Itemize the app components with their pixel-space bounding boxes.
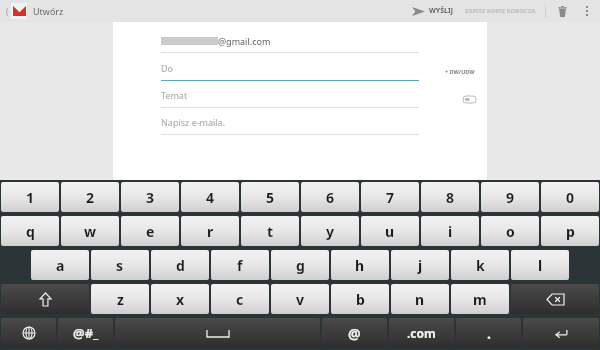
button[interactable]: u — [361, 216, 419, 246]
staticText: e — [146, 222, 155, 241]
staticText: q — [26, 222, 35, 241]
button[interactable]: .com — [389, 318, 454, 348]
button[interactable]: d — [151, 250, 209, 280]
button[interactable]: Shift — [1, 284, 89, 314]
staticText: d — [176, 256, 185, 275]
staticText: 2 — [86, 188, 95, 207]
button[interactable]: z — [91, 284, 149, 314]
staticText: c — [236, 290, 244, 309]
staticText: @#_ — [73, 324, 99, 342]
staticText: o — [506, 222, 515, 241]
staticText: x — [176, 290, 185, 309]
staticText: a — [56, 256, 65, 275]
staticText: 8 — [446, 188, 455, 207]
button[interactable]: @ — [322, 318, 387, 348]
button[interactable]: e — [121, 216, 179, 246]
button[interactable]: @#_ — [58, 318, 113, 348]
button[interactable]: WYŚLIJ — [409, 0, 456, 22]
button[interactable]: y — [301, 216, 359, 246]
staticText: m — [473, 290, 487, 309]
staticText: p — [566, 222, 575, 241]
staticText: 1 — [26, 188, 35, 207]
button[interactable]: o — [481, 216, 539, 246]
button[interactable]: Enter — [523, 318, 599, 348]
button[interactable]: a — [31, 250, 89, 280]
staticText: .com — [407, 325, 436, 341]
button[interactable]: Attach file — [461, 94, 477, 104]
staticText: l — [538, 256, 543, 275]
button[interactable]: 8 — [421, 182, 479, 212]
staticText: ( — [6, 6, 9, 17]
button[interactable]: s — [91, 250, 149, 280]
staticText: Napisz e-maila. — [161, 116, 226, 128]
staticText: Utwórz — [33, 5, 64, 17]
button[interactable]: + DW/UDW — [443, 66, 477, 77]
button[interactable]: Napisz e-maila. — [161, 116, 419, 128]
staticText: f — [237, 256, 243, 275]
staticText: + DW/UDW — [445, 68, 475, 75]
staticText: j — [418, 256, 423, 275]
button[interactable]: More options — [580, 4, 594, 18]
button[interactable]: 6 — [301, 182, 359, 212]
button[interactable]: v — [271, 284, 329, 314]
staticText: w — [84, 222, 96, 241]
staticText: y — [326, 222, 334, 241]
staticText: s — [116, 256, 124, 275]
staticText: h — [355, 256, 365, 275]
button[interactable]: b — [331, 284, 389, 314]
staticText: z — [117, 290, 124, 309]
button[interactable]: 7 — [361, 182, 419, 212]
staticText: . — [487, 324, 491, 343]
button[interactable]: ZAPISZ KOPIĘ ROBOCZĄ — [462, 7, 539, 15]
button[interactable]: j — [391, 250, 449, 280]
button[interactable]: g — [271, 250, 329, 280]
button[interactable]: Temat — [161, 89, 419, 101]
button[interactable]: 9 — [481, 182, 539, 212]
button[interactable]: 2 — [61, 182, 119, 212]
button[interactable]: 1 — [1, 182, 59, 212]
button[interactable]: Backspace — [511, 284, 599, 314]
staticText: @ — [348, 324, 361, 343]
button[interactable]: 4 — [181, 182, 239, 212]
staticText: Temat — [161, 89, 188, 101]
staticText: 0 — [566, 188, 575, 207]
button[interactable]: l — [511, 250, 569, 280]
button[interactable]: . — [456, 318, 521, 348]
staticText: i — [448, 222, 453, 241]
button[interactable]: x — [151, 284, 209, 314]
staticText: k — [476, 256, 485, 275]
button[interactable]: Do — [161, 62, 419, 74]
staticText: v — [296, 290, 304, 309]
staticText: 7 — [386, 188, 395, 207]
staticText: @gmail.com — [218, 35, 271, 47]
button[interactable]: p — [541, 216, 599, 246]
staticText: ZAPISZ KOPIĘ ROBOCZĄ — [465, 7, 536, 15]
button[interactable]: h — [331, 250, 389, 280]
staticText: 5 — [266, 188, 275, 207]
button[interactable]: Space — [115, 318, 320, 348]
staticText: 6 — [326, 188, 335, 207]
staticText: 9 — [506, 188, 515, 207]
button[interactable]: 5 — [241, 182, 299, 212]
button[interactable]: Delete — [554, 3, 570, 19]
button[interactable]: q — [1, 216, 59, 246]
staticText: 4 — [206, 188, 215, 207]
button[interactable]: k — [451, 250, 509, 280]
button[interactable]: n — [391, 284, 449, 314]
button[interactable]: 3 — [121, 182, 179, 212]
button[interactable]: r — [181, 216, 239, 246]
staticText: t — [267, 222, 274, 241]
button[interactable]: Change language — [1, 318, 56, 348]
staticText: n — [415, 290, 425, 309]
staticText: 3 — [146, 188, 155, 207]
button[interactable]: ( — [4, 3, 66, 19]
button[interactable]: f — [211, 250, 269, 280]
button[interactable]: 0 — [541, 182, 599, 212]
button[interactable]: m — [451, 284, 509, 314]
staticText: r — [207, 222, 214, 241]
button[interactable]: i — [421, 216, 479, 246]
button[interactable]: w — [61, 216, 119, 246]
staticText: WYŚLIJ — [429, 6, 453, 16]
button[interactable]: t — [241, 216, 299, 246]
button[interactable]: c — [211, 284, 269, 314]
